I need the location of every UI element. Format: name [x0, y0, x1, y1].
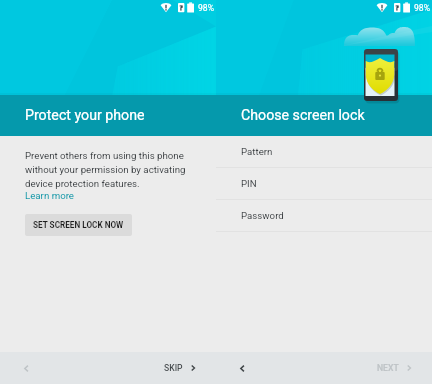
staticText: NEXT	[377, 363, 399, 373]
button[interactable]: SKIP	[160, 359, 202, 377]
button[interactable]: Back	[230, 356, 254, 380]
button[interactable]: SET SCREEN LOCK NOW	[25, 214, 132, 236]
staticText: 98%	[198, 3, 214, 13]
staticText: Choose screen lock	[241, 107, 365, 124]
staticText: SKIP	[164, 363, 183, 373]
staticText: PIN	[241, 178, 257, 189]
button[interactable]: NEXT	[373, 359, 418, 377]
staticText: Prevent others from using this phone wit…	[25, 150, 192, 190]
staticText: Protect your phone	[25, 107, 145, 124]
staticText: Learn more	[25, 190, 75, 201]
button[interactable]: PIN	[216, 168, 432, 200]
button[interactable]: Password	[216, 200, 432, 232]
button[interactable]: Learn more	[25, 190, 75, 201]
staticText: Password	[241, 210, 284, 221]
staticText: 98%	[414, 3, 430, 13]
staticText: Pattern	[241, 146, 273, 157]
button[interactable]: Back	[14, 356, 38, 380]
staticText: SET SCREEN LOCK NOW	[33, 220, 124, 230]
button[interactable]: Pattern	[216, 136, 432, 168]
